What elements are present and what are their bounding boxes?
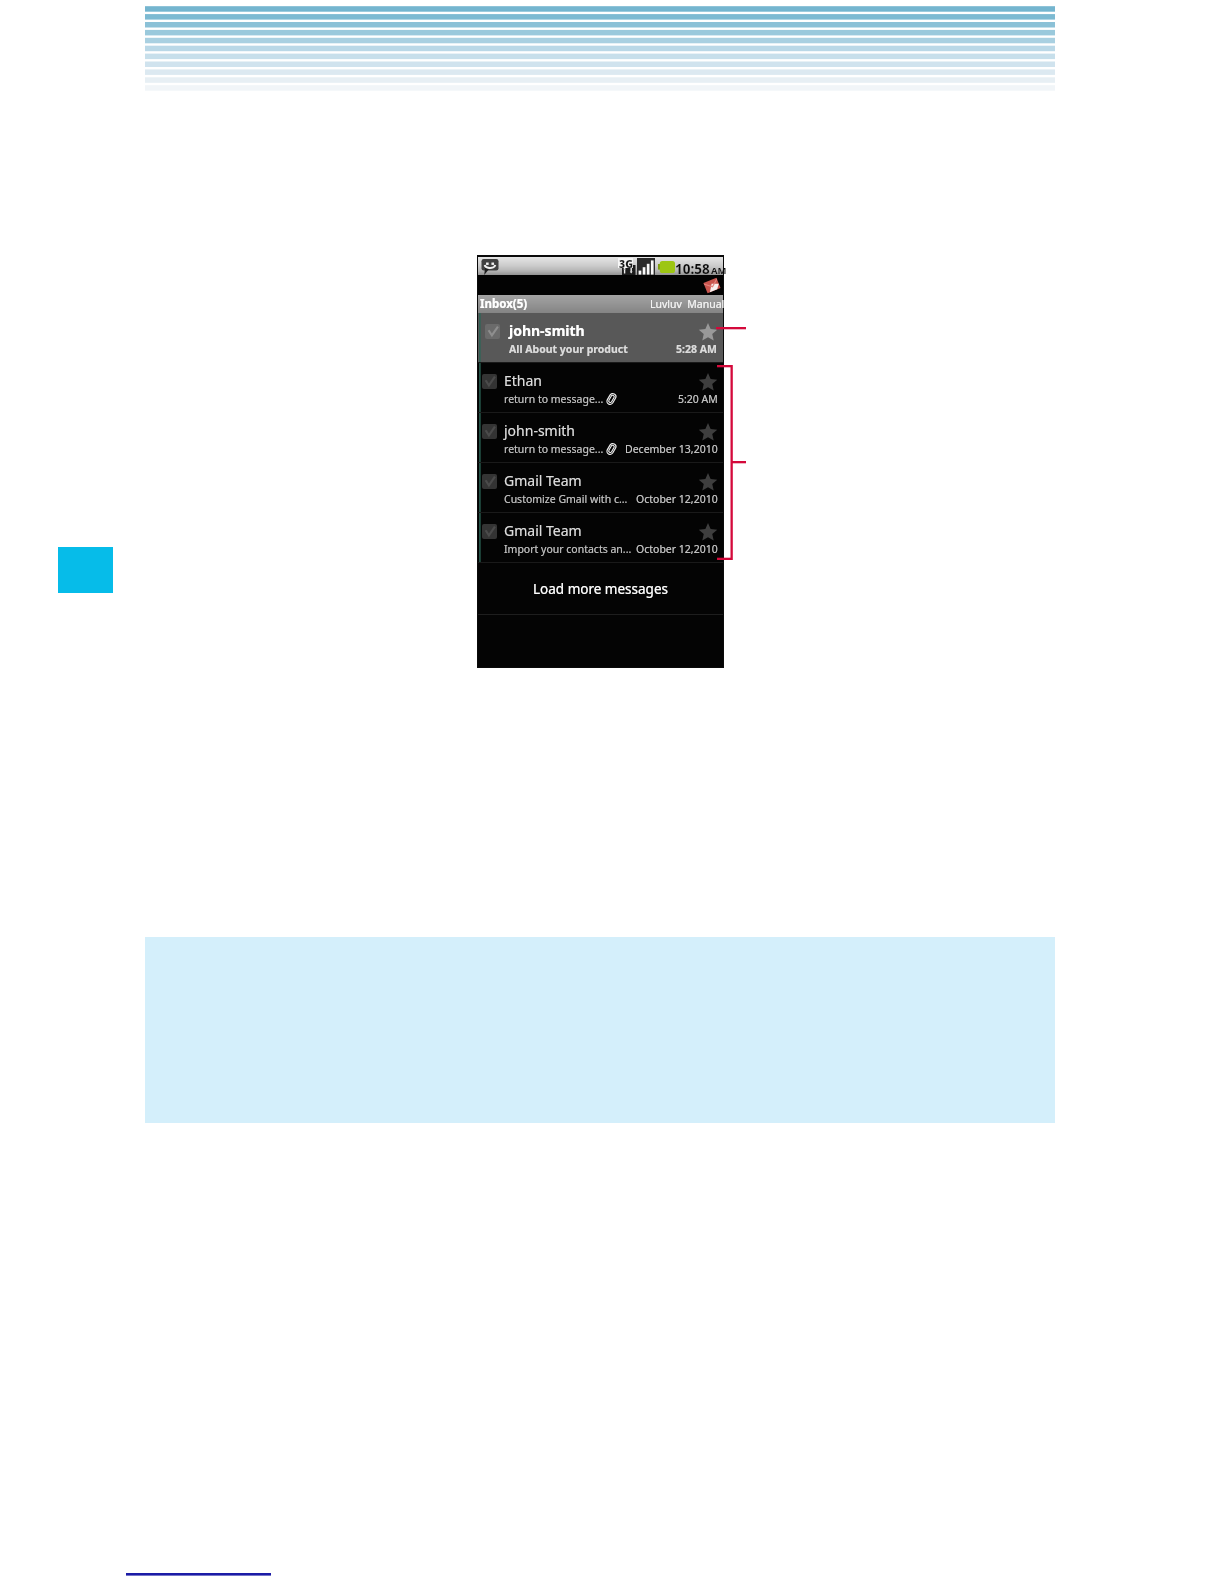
staticText: 5:28 AM [676, 342, 717, 356]
button[interactable]: Select conversation [485, 324, 500, 339]
staticText: return to message... [504, 442, 604, 456]
staticText: 5:20 AM [678, 392, 718, 406]
staticText: October 12,2010 [636, 492, 718, 506]
button[interactable]: New Gmail mail [705, 280, 719, 291]
staticText: 3G [619, 257, 633, 271]
button[interactable]: Select conversation [478, 313, 723, 363]
button[interactable]: Select conversation [482, 474, 497, 489]
button[interactable]: Star conversation [699, 373, 717, 391]
button[interactable]: Star conversation [699, 523, 717, 541]
button[interactable]: New message notification [481, 259, 499, 275]
button[interactable]: Star conversation [699, 473, 717, 491]
button[interactable]: Select conversation [478, 463, 723, 513]
staticText: john-smith [509, 321, 585, 340]
staticText: return to message... [504, 392, 604, 406]
staticText: Load more messages [533, 580, 668, 598]
button[interactable]: Star conversation [699, 323, 717, 341]
button[interactable]: Select conversation [482, 524, 497, 539]
staticText: john-smith [504, 421, 576, 440]
button[interactable]: Select conversation [482, 374, 497, 389]
button[interactable]: Load more messages [478, 563, 723, 614]
staticText: Customize Gmail with c... [504, 492, 628, 506]
staticText: Gmail Team [504, 521, 582, 540]
button[interactable]: Select conversation [482, 424, 497, 439]
staticText: Gmail Team [504, 471, 582, 490]
staticText: All About your product [509, 342, 628, 356]
staticText: AM [711, 264, 727, 277]
button[interactable]: Star conversation [699, 423, 717, 441]
staticText: Luvluv Manual [650, 297, 725, 311]
button[interactable]: Inbox(5) [478, 295, 723, 313]
staticText: 10:58 [675, 260, 710, 278]
button[interactable]: Select conversation [478, 413, 723, 463]
staticText: Ethan [504, 371, 542, 390]
staticText: December 13,2010 [625, 442, 718, 456]
staticText: Inbox(5) [480, 296, 528, 312]
button[interactable]: Select conversation [478, 513, 723, 563]
button[interactable]: Select conversation [478, 363, 723, 413]
staticText: Import your contacts an... [504, 542, 632, 556]
staticText: October 12,2010 [636, 542, 718, 556]
